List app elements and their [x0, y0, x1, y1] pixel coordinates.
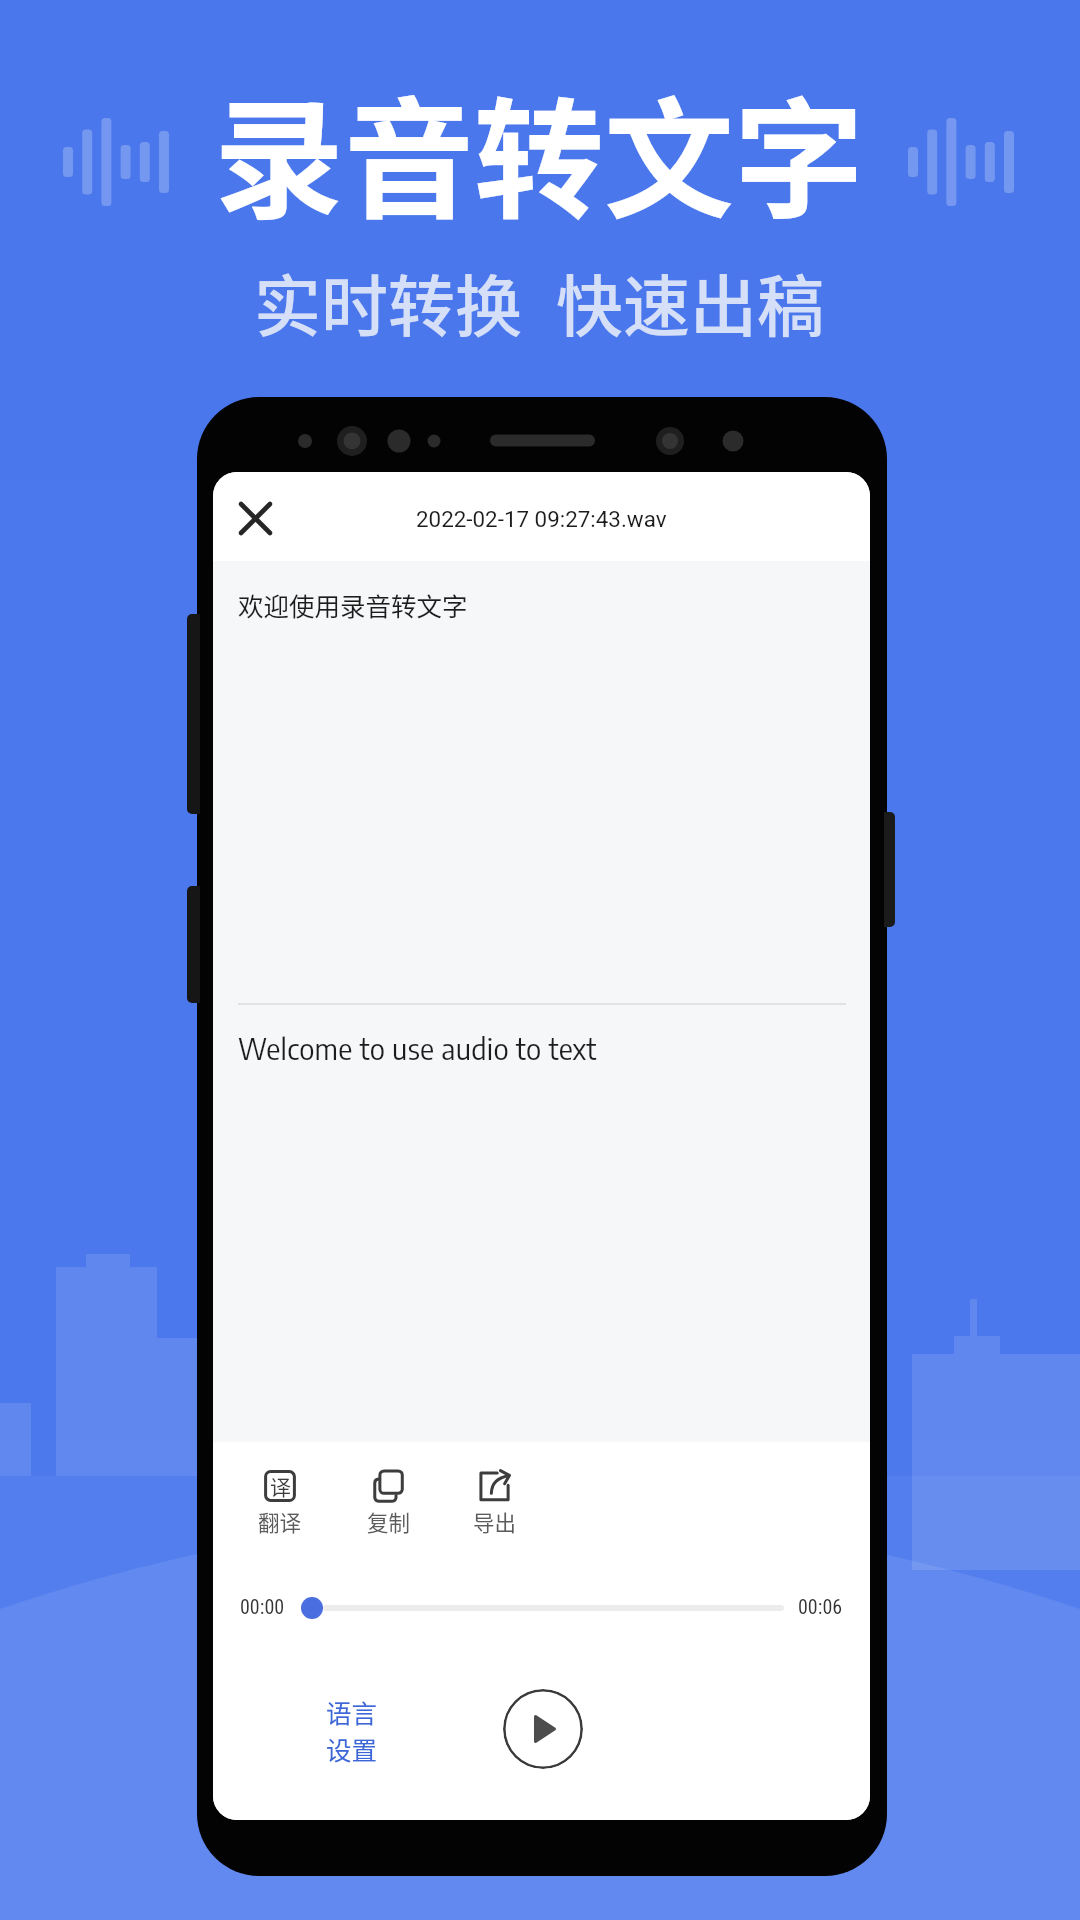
staticText: 录音转文字: [214, 56, 865, 244]
button[interactable]: Close: [227, 490, 283, 546]
staticText: 快速出稿: [556, 253, 824, 350]
staticText: 2022-02-17 09:27:43.wav: [416, 506, 667, 532]
button[interactable]: 译: [240, 1457, 320, 1549]
button[interactable]: 导出: [455, 1457, 535, 1549]
staticText: 语言 设置: [326, 1693, 378, 1763]
staticText: 00:00: [240, 1595, 285, 1618]
staticText: 导出: [473, 1506, 517, 1537]
staticText: 00:06: [798, 1595, 843, 1618]
button[interactable]: Seek: [301, 1582, 784, 1634]
staticText: 翻译: [258, 1506, 302, 1537]
staticText: 欢迎使用录音转文字: [238, 586, 468, 623]
button[interactable]: Play: [503, 1689, 583, 1769]
staticText: 译: [270, 1471, 291, 1501]
staticText: 实时转换: [254, 253, 522, 350]
button[interactable]: 语言 设置: [326, 1687, 380, 1757]
staticText: 复制: [367, 1506, 411, 1537]
button[interactable]: 复制: [349, 1457, 429, 1549]
staticText: Welcome to use audio to text: [238, 1030, 597, 1067]
